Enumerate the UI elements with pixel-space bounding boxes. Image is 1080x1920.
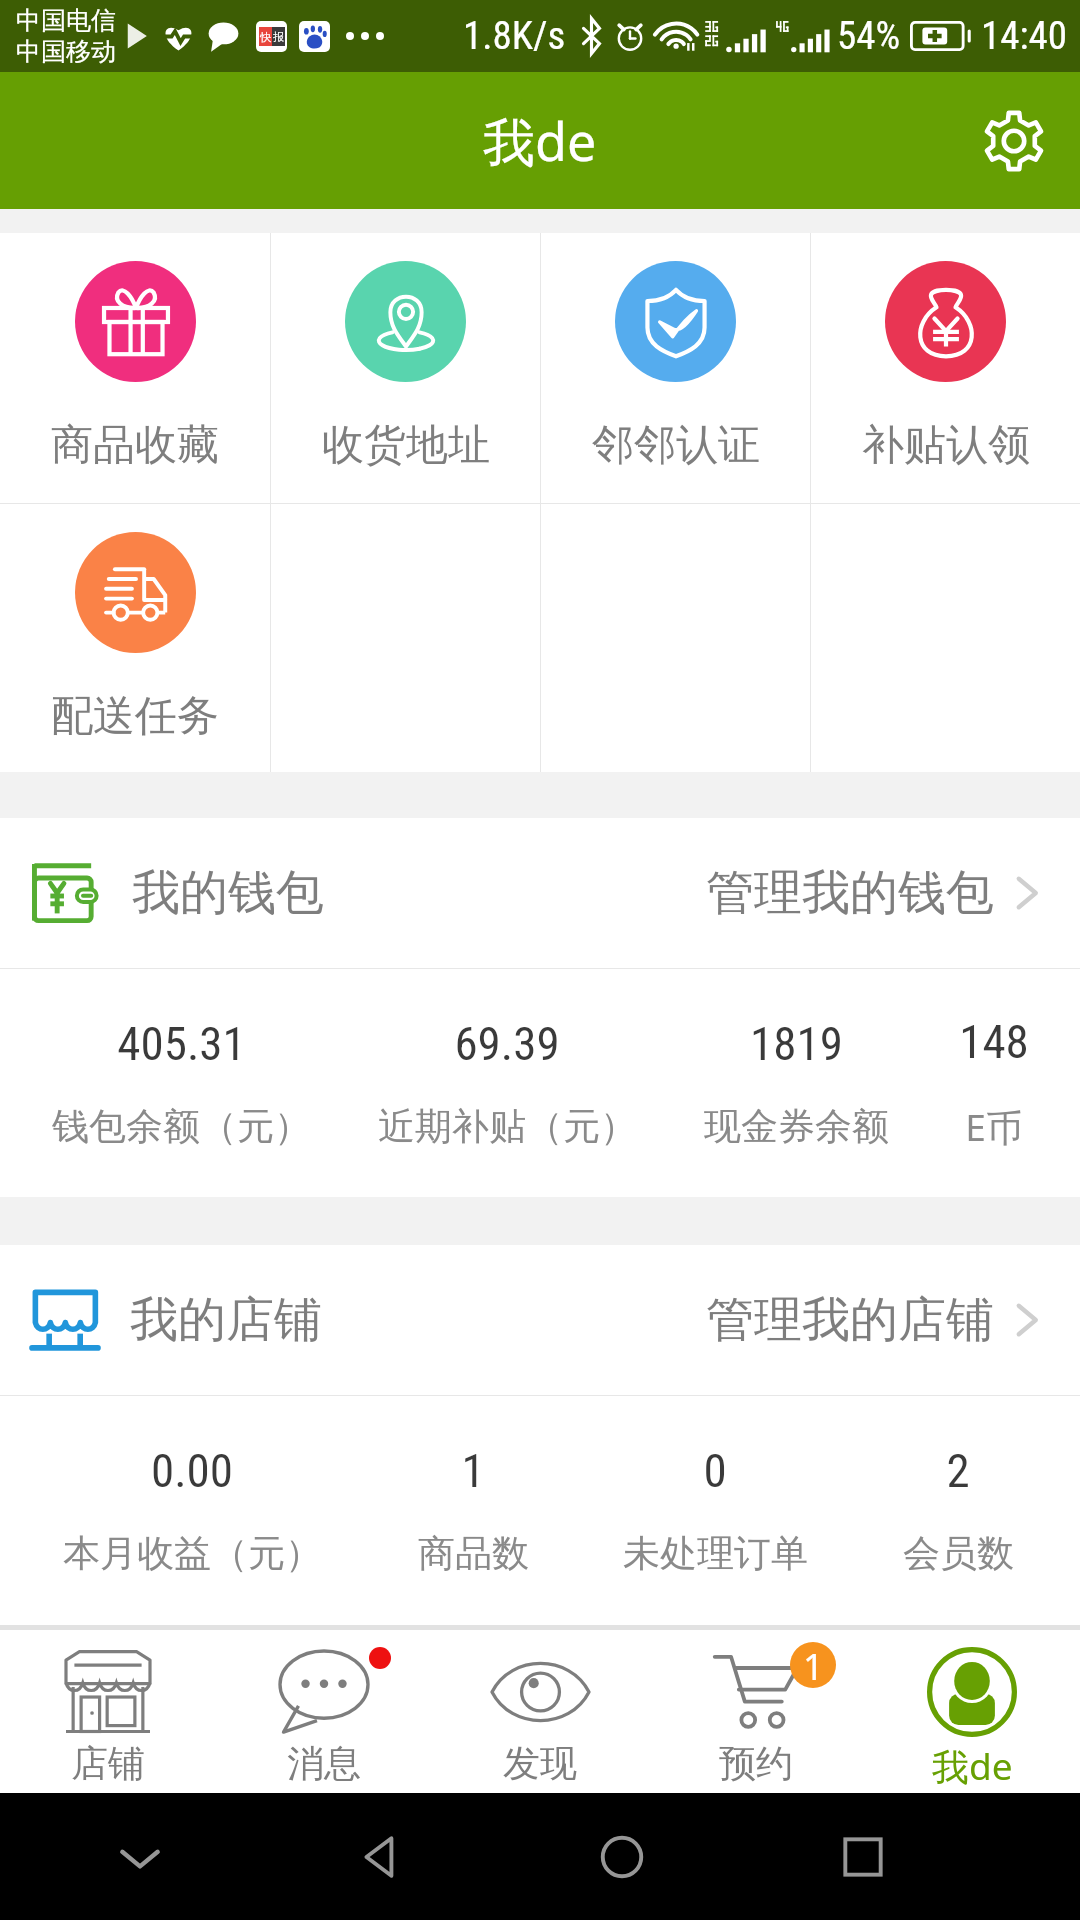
- button[interactable]: Back: [341, 1817, 421, 1897]
- button[interactable]: 配送任务: [0, 504, 270, 772]
- button[interactable]: 0: [562, 1443, 868, 1577]
- button[interactable]: 预约: [648, 1630, 864, 1793]
- staticText: 邻邻认证: [592, 419, 760, 472]
- staticText: E币: [965, 1101, 1023, 1152]
- button[interactable]: 商品收藏: [0, 233, 270, 503]
- staticText: 我de: [932, 1740, 1013, 1791]
- staticText: 我的钱包: [132, 863, 324, 923]
- button[interactable]: 0.00: [0, 1443, 384, 1577]
- button[interactable]: Home: [582, 1817, 662, 1897]
- staticText: 补贴认领: [862, 419, 1030, 472]
- staticText: 收货地址: [322, 419, 490, 472]
- staticText: 54%: [837, 13, 901, 59]
- button[interactable]: 收货地址: [271, 233, 540, 503]
- staticText: 本月收益（元）: [63, 1530, 322, 1577]
- staticText: 1: [803, 1642, 824, 1688]
- button[interactable]: 1819: [652, 1016, 940, 1150]
- button[interactable]: 405.31: [0, 1016, 362, 1150]
- staticText: 0.00: [151, 1443, 233, 1498]
- staticText: 1.8K/s: [463, 13, 566, 59]
- staticText: 近期补贴（元）: [378, 1103, 637, 1150]
- button[interactable]: 1: [384, 1443, 562, 1577]
- button[interactable]: 店铺: [0, 1630, 216, 1793]
- staticText: 0: [703, 1443, 727, 1498]
- button[interactable]: 我de: [864, 1630, 1080, 1793]
- button[interactable]: Settings: [969, 96, 1059, 186]
- staticText: 会员数: [903, 1530, 1014, 1577]
- button[interactable]: 消息: [216, 1630, 432, 1793]
- staticText: 消息: [287, 1740, 361, 1787]
- button[interactable]: Recent apps: [823, 1817, 903, 1897]
- staticText: 发现: [503, 1740, 577, 1787]
- staticText: 148: [959, 1014, 1029, 1069]
- staticText: 2: [946, 1443, 970, 1498]
- staticText: 预约: [719, 1740, 793, 1787]
- staticText: 1: [461, 1443, 485, 1498]
- button[interactable]: 发现: [432, 1630, 648, 1793]
- button[interactable]: 补贴认领: [811, 233, 1080, 503]
- button[interactable]: 2: [868, 1443, 1048, 1577]
- staticText: 管理我的店铺: [706, 1290, 994, 1350]
- staticText: 中国电信: [16, 5, 116, 36]
- button[interactable]: 我的钱包: [0, 818, 1080, 968]
- button[interactable]: 69.39: [362, 1016, 652, 1150]
- staticText: 商品数: [418, 1530, 529, 1577]
- staticText: 店铺: [71, 1740, 145, 1787]
- staticText: 管理我的钱包: [706, 863, 994, 923]
- button[interactable]: 148: [940, 1014, 1048, 1152]
- button[interactable]: Hide keyboard: [100, 1817, 180, 1897]
- button[interactable]: 我的店铺: [0, 1245, 1080, 1395]
- staticText: 1819: [750, 1016, 843, 1071]
- staticText: 14:40: [981, 13, 1068, 59]
- staticText: 未处理订单: [623, 1530, 808, 1577]
- staticText: 405.31: [117, 1016, 246, 1071]
- staticText: 69.39: [454, 1016, 560, 1071]
- staticText: 钱包余额（元）: [52, 1103, 311, 1150]
- staticText: 中国移动: [16, 36, 116, 67]
- staticText: 我的店铺: [130, 1290, 322, 1350]
- staticText: 我de: [483, 105, 597, 176]
- button[interactable]: 邻邻认证: [541, 233, 810, 503]
- staticText: 现金券余额: [704, 1103, 889, 1150]
- staticText: 商品收藏: [51, 419, 219, 472]
- staticText: 配送任务: [51, 690, 219, 743]
- staticText: 报: [273, 30, 284, 44]
- staticText: 快: [260, 30, 271, 44]
